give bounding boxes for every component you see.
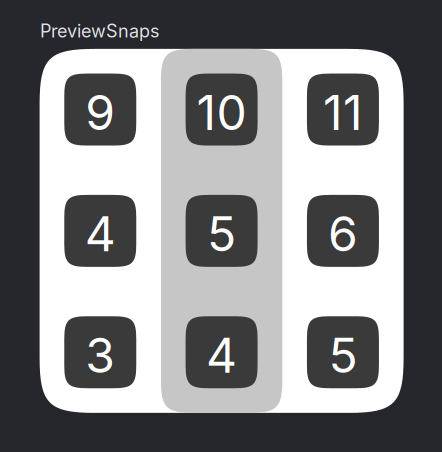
- button[interactable]: 11: [307, 74, 379, 146]
- staticText: 3: [85, 326, 115, 384]
- staticText: 9: [85, 83, 115, 142]
- staticText: 4: [206, 326, 237, 384]
- button[interactable]: 5: [186, 195, 258, 267]
- button[interactable]: 5: [307, 316, 379, 388]
- staticText: 5: [207, 205, 236, 263]
- staticText: 5: [328, 326, 357, 384]
- button[interactable]: 10: [186, 74, 258, 146]
- button[interactable]: 9: [64, 74, 136, 146]
- staticText: PreviewSnaps: [40, 20, 160, 42]
- button[interactable]: 4: [64, 195, 136, 267]
- staticText: 6: [328, 205, 358, 263]
- button[interactable]: 4: [186, 316, 258, 388]
- staticText: 10: [197, 83, 247, 142]
- staticText: 4: [85, 205, 116, 263]
- button[interactable]: 6: [307, 195, 379, 267]
- button[interactable]: 3: [64, 316, 136, 388]
- staticText: 11: [323, 83, 363, 142]
